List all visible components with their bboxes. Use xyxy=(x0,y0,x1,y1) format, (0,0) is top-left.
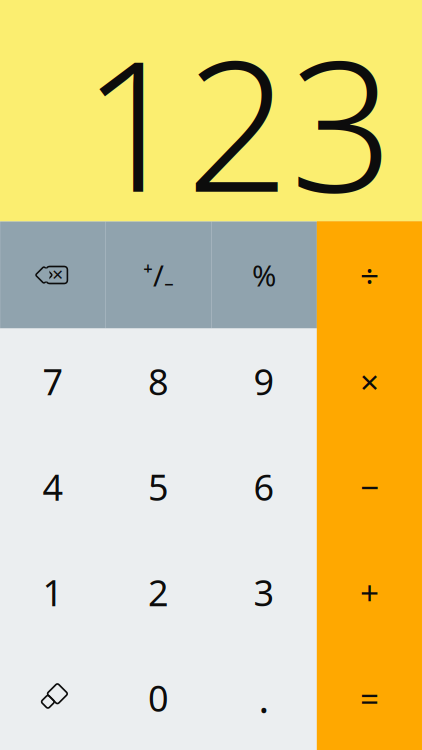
staticText: 4 xyxy=(42,463,63,511)
staticText: − xyxy=(360,465,379,509)
button[interactable]: Plus minus xyxy=(106,221,211,328)
button[interactable]: 9 xyxy=(211,328,317,434)
staticText: ⁺/₋ xyxy=(143,255,174,294)
staticText: + xyxy=(360,570,379,614)
button[interactable]: Add xyxy=(317,539,422,645)
staticText: ✕ xyxy=(51,267,63,283)
staticText: 123 xyxy=(82,1,394,242)
staticText: 6 xyxy=(254,463,275,511)
button[interactable]: 1 xyxy=(0,539,106,645)
staticText: 7 xyxy=(42,357,63,405)
button[interactable]: . xyxy=(211,645,317,750)
button[interactable]: Divide xyxy=(317,221,422,328)
staticText: 3 xyxy=(254,568,275,616)
staticText: ÷ xyxy=(360,253,379,297)
staticText: . xyxy=(259,671,270,724)
button[interactable]: 4 xyxy=(0,434,106,539)
staticText: = xyxy=(360,676,379,720)
staticText: 1 xyxy=(42,568,63,616)
button[interactable]: 3 xyxy=(211,539,317,645)
button[interactable]: 5 xyxy=(106,434,211,539)
staticText: 9 xyxy=(254,357,275,405)
button[interactable]: Subtract xyxy=(317,434,422,539)
staticText: 0 xyxy=(148,674,169,722)
button[interactable]: 7 xyxy=(0,328,106,434)
button[interactable]: Multiply xyxy=(317,328,422,434)
staticText: × xyxy=(360,359,379,403)
staticText: 8 xyxy=(148,357,169,405)
button[interactable]: 8 xyxy=(106,328,211,434)
button[interactable]: Backspace xyxy=(0,221,106,328)
button[interactable]: 2 xyxy=(106,539,211,645)
button[interactable]: 6 xyxy=(211,434,317,539)
button[interactable]: Equals xyxy=(317,645,422,750)
button[interactable]: Theme xyxy=(0,645,106,750)
staticText: 5 xyxy=(148,463,169,511)
staticText: % xyxy=(252,255,276,294)
button[interactable]: 0 xyxy=(106,645,211,750)
staticText: 2 xyxy=(148,568,169,616)
button[interactable]: Percent xyxy=(211,221,317,328)
